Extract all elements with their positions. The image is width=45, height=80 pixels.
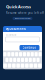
- button[interactable]: Open recent session: [12, 17, 32, 20]
- staticText: Document name: [5, 34, 16, 36]
- button[interactable]: Continue: [19, 45, 39, 50]
- staticText: Quick Access: [6, 4, 31, 9]
- staticText: Resume where you left off: [6, 11, 44, 15]
- staticText: My Documents: [5, 27, 25, 31]
- staticText: Open recent session: [14, 18, 30, 19]
- staticText: Continue: [22, 46, 36, 49]
